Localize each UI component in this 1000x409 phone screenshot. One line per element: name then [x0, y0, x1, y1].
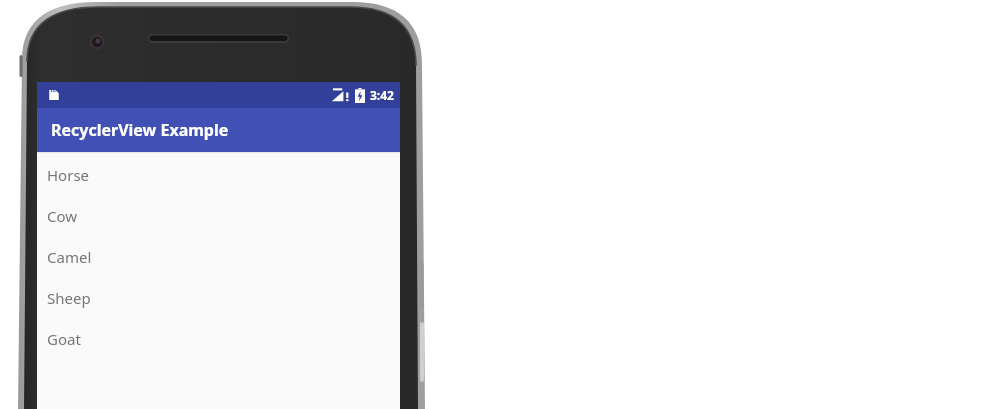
staticText: Goat — [47, 329, 81, 349]
button[interactable]: Camel — [37, 236, 400, 277]
staticText: Cow — [47, 206, 78, 226]
staticText: Sheep — [47, 288, 91, 308]
button[interactable]: Goat — [37, 318, 400, 359]
button[interactable]: Cow — [37, 195, 400, 236]
staticText: 3:42 — [370, 87, 394, 103]
staticText: Camel — [47, 247, 92, 267]
staticText: RecyclerView Example — [51, 119, 229, 141]
button[interactable]: Sheep — [37, 277, 400, 318]
button[interactable]: RecyclerView Example — [37, 108, 400, 152]
staticText: Horse — [47, 165, 90, 185]
button[interactable]: Horse — [37, 154, 400, 195]
